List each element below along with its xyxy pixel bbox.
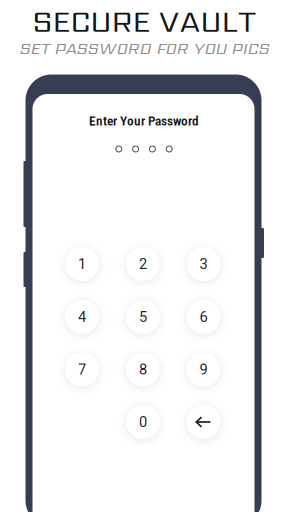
button[interactable]: Delete	[179, 398, 227, 446]
button[interactable]: 4	[58, 293, 106, 341]
staticText: 4	[78, 308, 86, 326]
button[interactable]: 6	[179, 293, 227, 341]
staticText: Enter Your Password	[89, 113, 199, 129]
staticText: 2	[139, 255, 147, 273]
button[interactable]: 1	[58, 240, 106, 288]
button[interactable]: 3	[179, 240, 227, 288]
staticText: 1	[78, 255, 86, 273]
staticText: 7	[78, 361, 86, 378]
staticText: 3	[199, 255, 207, 273]
button[interactable]: 5	[119, 293, 167, 341]
staticText: SECURE VAULT	[32, 0, 255, 42]
button[interactable]: 2	[119, 240, 167, 288]
staticText: 0	[139, 413, 147, 431]
staticText: 8	[139, 361, 147, 378]
staticText: SET PASSWORD FOR YOU PICS	[19, 36, 269, 60]
button[interactable]: 7	[58, 345, 106, 393]
staticText: 5	[139, 308, 147, 326]
button[interactable]: 9	[179, 345, 227, 393]
staticText: 6	[199, 308, 207, 326]
staticText: 9	[199, 361, 207, 378]
button[interactable]: 0	[119, 398, 167, 446]
button[interactable]: 8	[119, 345, 167, 393]
